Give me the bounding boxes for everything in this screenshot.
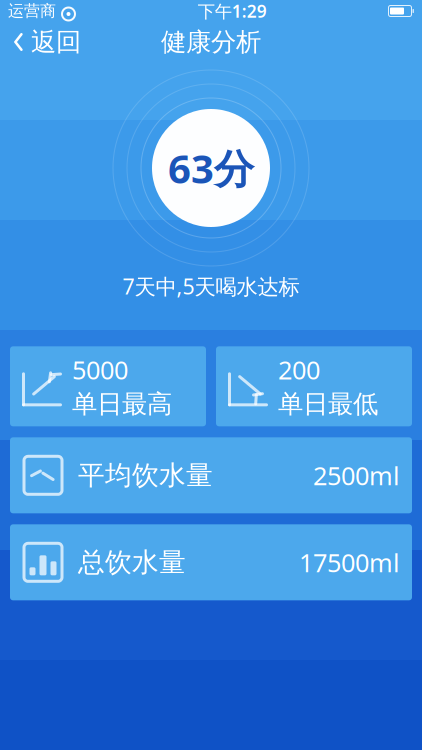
staticText: 运营商 — [8, 1, 56, 21]
button[interactable]: 总饮水量 — [10, 524, 412, 600]
staticText: 返回 — [31, 26, 81, 57]
staticText: 下午1:29 — [198, 0, 267, 22]
staticText: 200 — [278, 353, 320, 387]
button[interactable]: 5000 — [10, 346, 206, 426]
staticText: 单日最高 — [72, 389, 172, 420]
button[interactable]: 200 — [216, 346, 412, 426]
staticText: 7天中,5天喝水达标 — [122, 272, 299, 300]
button[interactable]: 平均饮水量 — [10, 437, 412, 513]
button[interactable]: 返回 — [0, 22, 93, 62]
staticText: 单日最低 — [278, 389, 378, 420]
staticText: 17500ml — [299, 545, 400, 579]
staticText: 63分 — [168, 141, 254, 194]
staticText: 2500ml — [313, 458, 400, 492]
staticText: 健康分析 — [161, 26, 261, 57]
staticText: 5000 — [72, 353, 128, 387]
staticText: 总饮水量 — [78, 546, 186, 579]
staticText: 平均饮水量 — [78, 459, 213, 492]
